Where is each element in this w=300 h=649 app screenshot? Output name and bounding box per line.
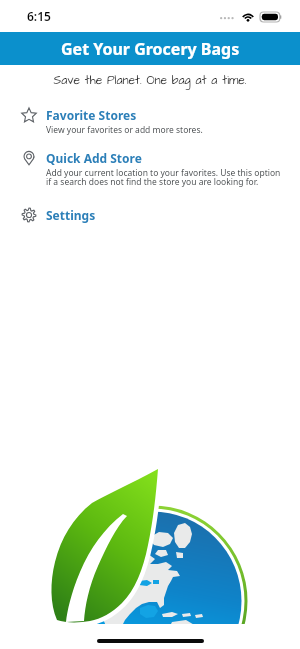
staticText: Save the Planet. One bag at a time. <box>0 72 300 89</box>
staticText: 6:15 <box>27 8 51 24</box>
other: Quick Add Store <box>21 150 37 166</box>
button[interactable]: Favorite Stores <box>0 107 300 136</box>
button[interactable]: Settings <box>0 207 300 223</box>
other: Settings <box>21 207 37 223</box>
staticText: Quick Add Store <box>46 150 142 166</box>
other: Favorite Stores <box>21 107 37 123</box>
staticText: Get Your Grocery Bags <box>61 38 240 60</box>
staticText: Favorite Stores <box>46 107 137 123</box>
staticText: Settings <box>46 207 96 223</box>
button[interactable]: Quick Add Store <box>0 150 300 188</box>
staticText: View your favorites or add more stores. <box>46 124 203 136</box>
button[interactable]: Get Your Grocery Bags <box>0 32 300 65</box>
staticText: Add your current location to your favori… <box>46 167 286 188</box>
